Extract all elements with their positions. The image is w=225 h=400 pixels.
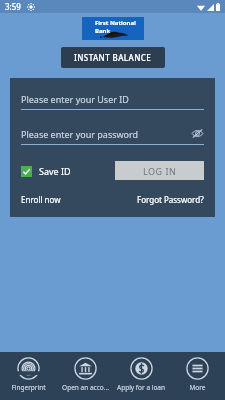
button[interactable]: More: [169, 352, 225, 400]
staticText: Enroll now: [21, 194, 61, 205]
button[interactable]: Fingerprint: [0, 352, 57, 400]
staticText: Open an acco...: [62, 383, 109, 392]
staticText: Forgot Password?: [137, 194, 204, 205]
button[interactable]: Forgot Password?: [137, 194, 204, 205]
staticText: Apply for a loan: [117, 383, 165, 392]
staticText: Save ID: [39, 165, 71, 177]
staticText: INSTANT BALANCE: [74, 52, 152, 63]
button[interactable]: Open an acco...: [57, 352, 113, 400]
staticText: Please enter your password: [21, 128, 191, 140]
button[interactable]: INSTANT BALANCE: [61, 47, 165, 68]
staticText: Please enter your User ID: [21, 93, 204, 105]
button[interactable]: LOG IN: [115, 161, 204, 180]
staticText: LOG IN: [143, 165, 177, 177]
staticText: Fingerprint: [11, 383, 46, 392]
staticText: Bank: [95, 27, 111, 35]
button[interactable]: Apply for a loan: [113, 352, 169, 400]
button[interactable]: Save ID: [21, 165, 71, 177]
button[interactable]: Please enter your User ID: [21, 93, 204, 110]
other: Show password: [191, 127, 204, 140]
staticText: 3:59: [5, 1, 21, 12]
button[interactable]: Enroll now: [21, 194, 61, 205]
staticText: More: [189, 383, 206, 392]
button[interactable]: Please enter your password: [21, 127, 204, 145]
staticText: First National: [95, 19, 136, 27]
